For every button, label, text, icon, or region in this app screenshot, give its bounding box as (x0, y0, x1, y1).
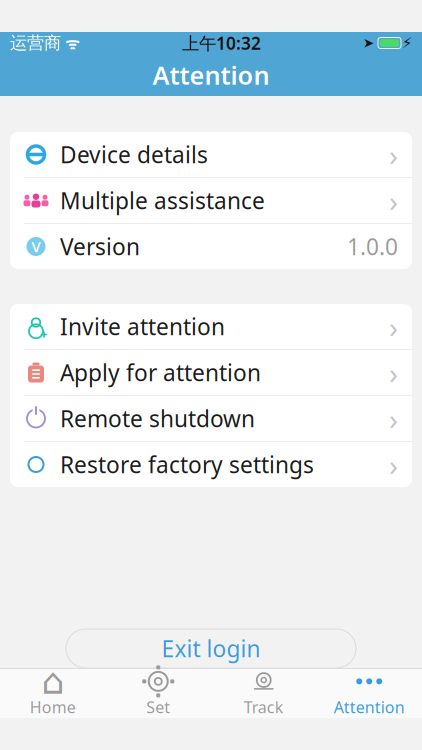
button[interactable]: Multiple assistance (10, 178, 412, 223)
button[interactable]: Apply for attention (10, 350, 412, 395)
staticText: › (389, 135, 398, 174)
staticText: Remote shutdown (60, 403, 255, 433)
staticText: ⚡︎ (402, 35, 412, 51)
staticText: Attention (152, 58, 269, 92)
button[interactable]: Exit login (66, 629, 356, 668)
staticText: 1.0.0 (347, 231, 398, 261)
button[interactable]: ⌂ (0, 669, 105, 717)
button[interactable]: Device details (10, 132, 412, 177)
staticText: Attention (334, 696, 405, 718)
staticText: 上午10:32 (182, 31, 261, 54)
button[interactable]: Track (211, 669, 316, 717)
staticText: ⌂ (41, 661, 64, 702)
staticText: › (389, 353, 398, 392)
staticText: Multiple assistance (60, 185, 265, 215)
staticText: Exit login (161, 633, 260, 663)
staticText: 运营商 (10, 32, 61, 54)
staticText: › (389, 307, 398, 346)
staticText: ᯤ (61, 32, 80, 54)
button[interactable]: Remote shutdown (10, 396, 412, 441)
staticText: Device details (60, 139, 208, 169)
staticText: › (389, 181, 398, 220)
staticText: ➤ (363, 35, 374, 50)
button[interactable]: V (10, 224, 412, 269)
staticText: V (31, 237, 40, 256)
button[interactable]: Invite attention (10, 304, 412, 349)
staticText: Track (244, 696, 284, 718)
staticText: Version (60, 231, 140, 261)
staticText: Home (30, 696, 76, 718)
button[interactable]: Set (105, 669, 211, 717)
staticText: › (389, 445, 398, 484)
button[interactable]: ◢ (10, 442, 412, 487)
staticText: › (389, 399, 398, 438)
staticText: Set (146, 696, 170, 718)
staticText: Apply for attention (60, 357, 261, 387)
staticText: Invite attention (60, 311, 225, 341)
staticText: Restore factory settings (60, 449, 314, 479)
button[interactable]: Attention (316, 669, 422, 717)
